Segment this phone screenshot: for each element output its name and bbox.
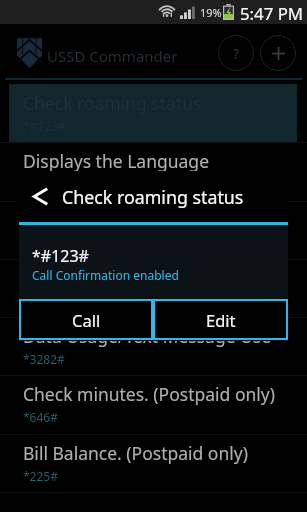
staticText: Check minutes. (Postpaid only) [23, 382, 275, 406]
staticText: ? [233, 44, 240, 63]
button[interactable]: Call [19, 299, 153, 340]
staticText: 19% [200, 5, 222, 20]
staticText: Call [72, 309, 101, 331]
staticText: *3282# [23, 351, 65, 367]
staticText: 5:47 PM [240, 2, 304, 25]
button[interactable]: Bill Balance. (Postpaid only) [0, 434, 307, 492]
button[interactable]: Back [33, 188, 48, 205]
staticText: *#0000# [23, 176, 73, 192]
button[interactable]: Edit [153, 299, 288, 340]
staticText: Displays the Language [23, 149, 210, 173]
staticText: Bill Balance. (Postpaid only) [23, 441, 248, 465]
staticText: Check roaming status [23, 91, 202, 115]
staticText: *777# [23, 235, 58, 251]
staticText: Data Usage/Text Message Use [23, 324, 272, 348]
staticText: *#123# [23, 118, 66, 134]
staticText: *646# [23, 409, 58, 425]
staticText: Edit [206, 309, 236, 331]
button[interactable]: Check balance (Prepaid) [0, 201, 307, 259]
button[interactable]: Add [260, 35, 296, 71]
staticText: Check balance (Prepaid) [23, 208, 220, 232]
staticText: *729# [23, 293, 58, 309]
staticText: Call Confirmation enabled [32, 267, 179, 283]
staticText: Check roaming status [62, 185, 244, 209]
staticText: Refill Account (Prepaid) [23, 266, 213, 290]
button[interactable]: Help [218, 35, 254, 71]
button[interactable]: Check minutes. (Postpaid only) [0, 375, 307, 433]
button[interactable]: Displays the Language [0, 142, 307, 200]
staticText: *#123# [32, 245, 89, 267]
staticText: USSD Commander [47, 46, 178, 66]
button[interactable]: Refill Account (Prepaid) [0, 259, 307, 317]
button[interactable]: Check roaming status [0, 84, 307, 142]
button[interactable]: Data Usage/Text Message Use [0, 317, 307, 375]
staticText: *225# [23, 468, 58, 484]
